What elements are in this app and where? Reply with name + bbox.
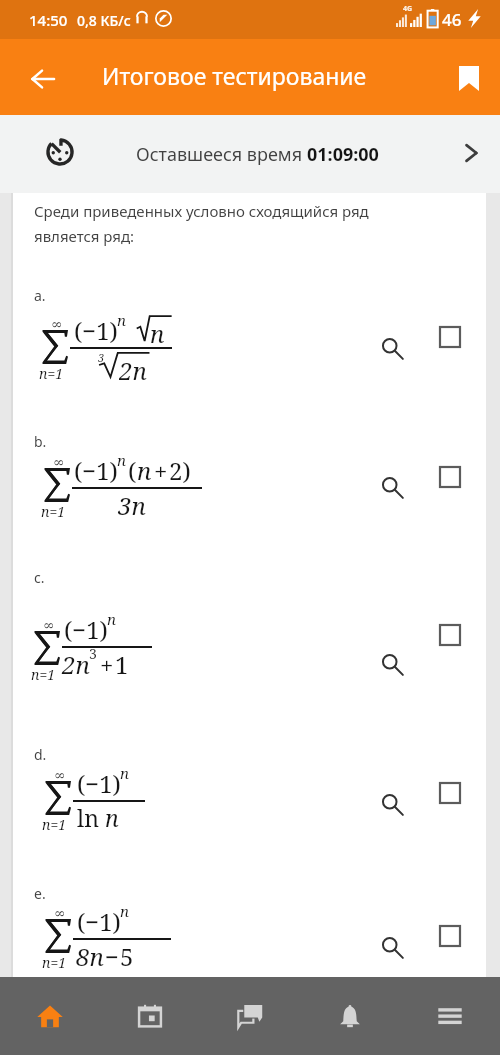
- staticText: 01:09:00: [307, 142, 379, 167]
- button[interactable]: Calendar: [100, 977, 200, 1055]
- staticText: n=1: [39, 364, 64, 383]
- staticText: 3: [89, 644, 97, 663]
- staticText: n: [107, 609, 116, 629]
- staticText: 46: [442, 8, 462, 31]
- button[interactable]: Select answer: [432, 319, 468, 355]
- staticText: ∞: [53, 454, 65, 470]
- button[interactable]: Back: [20, 56, 66, 102]
- staticText: n=1: [41, 502, 66, 521]
- staticText: 2): [169, 454, 191, 487]
- staticText: (−1): [74, 454, 118, 487]
- staticText: c.: [34, 568, 45, 587]
- staticText: 0,8 КБ/с: [77, 11, 131, 30]
- button[interactable]: Timer: [46, 138, 74, 166]
- staticText: ∞: [43, 617, 55, 633]
- staticText: 2n: [119, 354, 147, 382]
- button[interactable]: Select answer: [432, 918, 468, 954]
- button[interactable]: Menu: [400, 977, 500, 1055]
- staticText: 2n: [62, 648, 90, 681]
- button[interactable]: Select answer: [432, 775, 468, 811]
- staticText: Среди приведенных условно сходящийся ряд: [34, 201, 369, 221]
- staticText: (−1): [77, 905, 121, 938]
- staticText: a.: [34, 286, 46, 305]
- staticText: n=1: [31, 665, 56, 684]
- staticText: −: [105, 940, 119, 973]
- staticText: n: [117, 310, 126, 330]
- staticText: n=1: [42, 953, 67, 972]
- button[interactable]: Zoom formula: [375, 647, 409, 681]
- staticText: является ряд:: [34, 226, 135, 246]
- staticText: 14:50: [29, 10, 68, 30]
- button[interactable]: Notifications: [300, 977, 400, 1055]
- staticText: 3n: [118, 489, 146, 522]
- staticText: n: [120, 763, 129, 783]
- staticText: e.: [34, 884, 46, 903]
- staticText: n: [137, 454, 152, 487]
- staticText: Оставшееся время: [136, 142, 307, 167]
- staticText: n: [150, 317, 165, 346]
- staticText: n: [117, 450, 126, 470]
- button[interactable]: Zoom formula: [375, 930, 409, 964]
- button[interactable]: Select answer: [432, 459, 468, 495]
- staticText: ∞: [51, 316, 63, 332]
- staticText: ln: [77, 802, 105, 833]
- staticText: 4G: [403, 4, 413, 14]
- staticText: +: [154, 454, 168, 487]
- staticText: (: [128, 454, 137, 487]
- staticText: (−1): [74, 314, 118, 347]
- staticText: ∞: [54, 767, 66, 783]
- staticText: +: [100, 648, 114, 681]
- button[interactable]: Zoom formula: [375, 787, 409, 821]
- staticText: n: [120, 901, 129, 921]
- button[interactable]: Bookmark: [443, 52, 493, 102]
- button[interactable]: Messages: [200, 977, 300, 1055]
- staticText: 8n: [76, 940, 104, 973]
- staticText: Итоговое тестирование: [102, 60, 367, 91]
- button[interactable]: Next question: [456, 139, 484, 167]
- staticText: (−1): [64, 613, 108, 646]
- staticText: (−1): [77, 767, 121, 800]
- staticText: ∞: [54, 905, 66, 921]
- button[interactable]: Select answer: [432, 617, 468, 653]
- staticText: b.: [34, 432, 47, 451]
- staticText: n: [105, 802, 119, 833]
- staticText: 3: [98, 350, 105, 365]
- staticText: 5: [120, 940, 134, 973]
- staticText: 1: [115, 648, 129, 681]
- button[interactable]: Zoom formula: [375, 331, 409, 365]
- button[interactable]: Zoom formula: [375, 470, 409, 504]
- staticText: d.: [34, 745, 47, 764]
- staticText: n=1: [42, 815, 67, 834]
- button[interactable]: Home: [0, 977, 100, 1055]
